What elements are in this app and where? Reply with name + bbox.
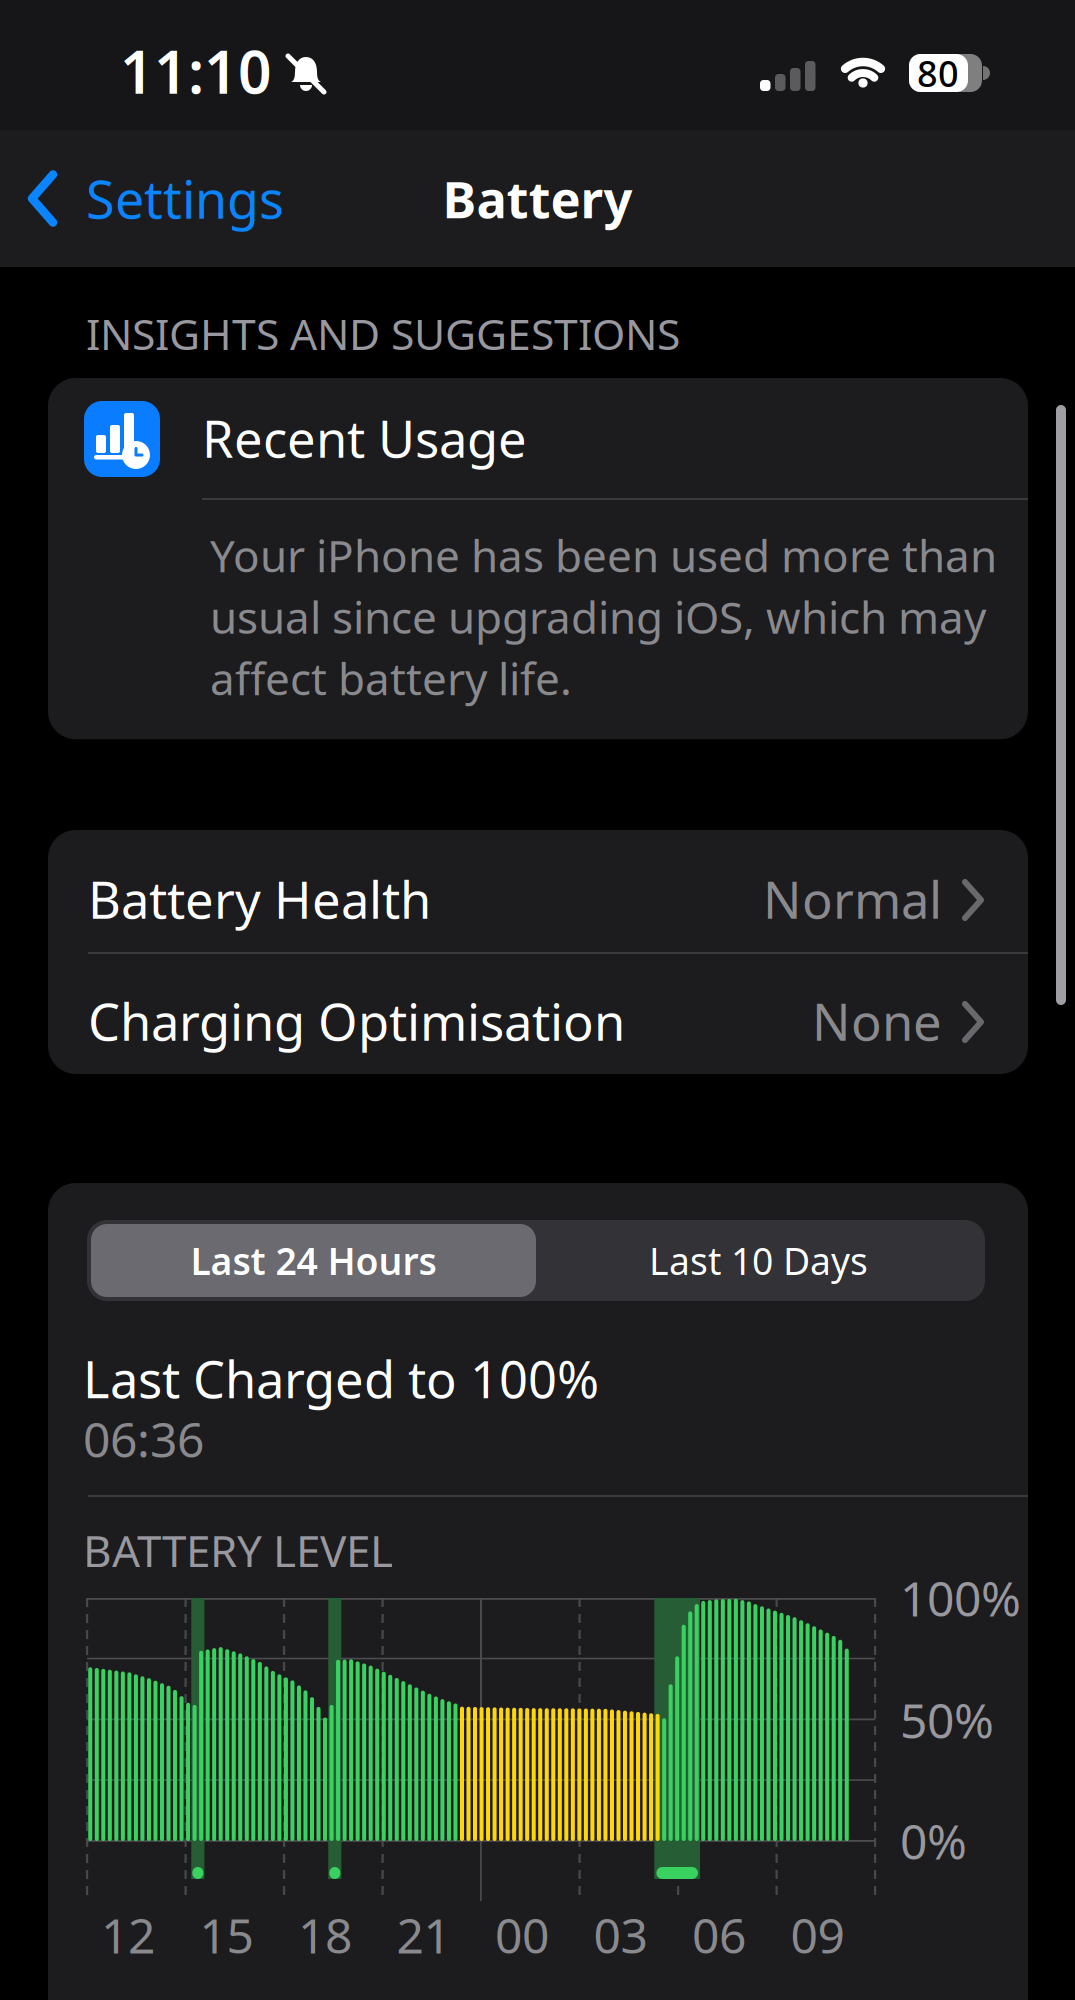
- staticText: affect battery life.: [210, 649, 572, 707]
- staticText: INSIGHTS AND SUGGESTIONS: [86, 305, 680, 362]
- staticText: Normal: [763, 865, 942, 933]
- staticText: 12: [101, 1903, 155, 1967]
- staticText: 06: [692, 1903, 746, 1967]
- staticText: 0%: [900, 1809, 967, 1873]
- button[interactable]: Charging Optimisation: [48, 960, 1028, 1082]
- staticText: Settings: [86, 164, 284, 233]
- staticText: Last Charged to 100%: [83, 1345, 599, 1412]
- staticText: 80: [917, 49, 959, 97]
- staticText: 100%: [900, 1566, 1021, 1630]
- button[interactable]: Battery Health: [48, 838, 1028, 960]
- staticText: Last 24 Hours: [190, 1236, 436, 1285]
- staticText: 15: [199, 1903, 253, 1967]
- staticText: 09: [790, 1903, 844, 1967]
- button[interactable]: Settings: [26, 154, 284, 243]
- staticText: Recent Usage: [202, 404, 527, 472]
- staticText: 21: [396, 1903, 450, 1967]
- staticText: Last 10 Days: [649, 1236, 868, 1285]
- staticText: Charging Optimisation: [88, 987, 625, 1055]
- staticText: usual since upgrading iOS, which may: [210, 587, 986, 646]
- staticText: 03: [593, 1903, 647, 1967]
- staticText: Battery Health: [88, 865, 431, 933]
- staticText: Battery: [442, 165, 632, 232]
- staticText: 00: [495, 1903, 549, 1967]
- staticText: Your iPhone has been used more than: [210, 526, 997, 584]
- staticText: None: [812, 987, 942, 1055]
- staticText: 18: [298, 1903, 352, 1967]
- staticText: 11:10: [120, 32, 272, 110]
- staticText: 06:36: [83, 1407, 204, 1471]
- staticText: BATTERY LEVEL: [83, 1521, 393, 1579]
- staticText: 50%: [900, 1688, 994, 1752]
- button[interactable]: Last 24 Hours: [91, 1224, 536, 1297]
- button[interactable]: Last 10 Days: [536, 1224, 981, 1297]
